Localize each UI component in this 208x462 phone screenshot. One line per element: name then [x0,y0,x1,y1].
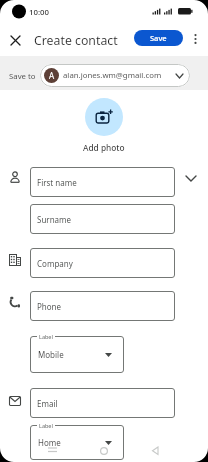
staticText: Label [39,422,53,429]
button[interactable]: Email [30,388,175,418]
staticText: Phone [37,301,62,312]
button[interactable]: Company [30,248,175,278]
button[interactable]: Surname [30,204,175,234]
staticText: Home [38,437,61,448]
staticText: Mobile [38,349,64,360]
staticText: Create contact [34,32,118,49]
button[interactable] [184,171,198,185]
button[interactable]: First name [30,167,175,197]
staticText: Save to [9,71,36,82]
button[interactable] [85,98,123,136]
staticText: First name [37,177,77,188]
staticText: A [49,70,55,81]
button[interactable]: Mobile [30,336,124,373]
button[interactable]: Home [30,425,124,460]
staticText: 10:00 [29,7,49,18]
staticText: Save [150,33,167,43]
button[interactable]: Save [134,30,183,46]
staticText: Surname [37,214,72,225]
button[interactable] [7,32,23,48]
staticText: Add photo [83,142,125,153]
staticText: Label [39,333,53,340]
staticText: alan.jones.wm@gmail.com [63,70,162,81]
button[interactable] [189,32,202,45]
button[interactable]: A [40,64,190,87]
button[interactable]: Phone [30,291,175,321]
staticText: Company [37,258,73,269]
staticText: Email [37,398,58,409]
